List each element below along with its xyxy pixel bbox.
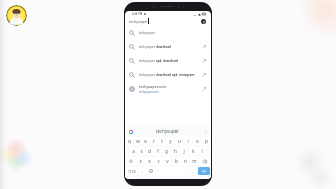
button[interactable]: Search bbox=[198, 167, 210, 175]
staticText: l bbox=[201, 148, 203, 154]
button[interactable]: Insert suggestion bbox=[201, 58, 207, 64]
button[interactable]: Shift bbox=[126, 157, 136, 165]
staticText: 4G bbox=[193, 13, 197, 16]
button[interactable]: w bbox=[134, 137, 141, 145]
button[interactable]: v bbox=[163, 157, 171, 165]
button[interactable]: e bbox=[142, 137, 149, 145]
button[interactable]: techysuper bbox=[125, 40, 211, 54]
staticText: x bbox=[148, 158, 151, 164]
staticText: g bbox=[165, 148, 168, 154]
staticText: instagram bbox=[179, 73, 195, 77]
button[interactable]: o bbox=[193, 137, 201, 145]
staticText: apk bbox=[172, 73, 179, 77]
staticText: download bbox=[156, 45, 171, 49]
button[interactable]: Backspace bbox=[199, 157, 210, 165]
button[interactable]: Emoji bbox=[147, 167, 155, 175]
button[interactable]: Google bbox=[128, 129, 133, 134]
staticText: download bbox=[163, 59, 178, 63]
button[interactable]: k bbox=[189, 147, 197, 155]
staticText: i bbox=[187, 138, 189, 144]
staticText: apk bbox=[156, 59, 163, 63]
staticText: a bbox=[132, 148, 135, 154]
button[interactable]: d bbox=[146, 147, 153, 155]
staticText: 4:44 PM bbox=[132, 12, 143, 16]
button[interactable]: Insert suggestion bbox=[201, 44, 207, 50]
staticText: ?123 bbox=[128, 169, 136, 174]
staticText: z bbox=[139, 158, 142, 164]
button[interactable]: a bbox=[130, 147, 137, 155]
button[interactable]: i bbox=[184, 137, 192, 145]
button[interactable]: p bbox=[202, 137, 210, 145]
staticText: h bbox=[174, 148, 177, 154]
staticText: f bbox=[157, 148, 159, 154]
button[interactable]: techysuper.com bbox=[125, 82, 211, 96]
staticText: n bbox=[184, 158, 187, 164]
button[interactable]: techysuper bbox=[125, 26, 211, 40]
staticText: , bbox=[141, 168, 143, 174]
staticText: v bbox=[166, 158, 169, 164]
staticText: techysuper bbox=[139, 73, 156, 77]
button[interactable]: r bbox=[150, 137, 157, 145]
staticText: u bbox=[178, 138, 181, 144]
staticText: techysuper bbox=[139, 31, 155, 35]
button[interactable]: techysuper bbox=[125, 68, 211, 82]
button[interactable]: More options bbox=[203, 129, 208, 134]
button[interactable]: n bbox=[181, 157, 189, 165]
staticText: techysuper bbox=[129, 19, 148, 24]
button[interactable]: techysuper bbox=[125, 54, 211, 68]
staticText: e bbox=[144, 138, 147, 144]
staticText: techysuper bbox=[156, 128, 179, 134]
button[interactable]: b bbox=[172, 157, 180, 165]
staticText: techysuper bbox=[139, 59, 156, 63]
staticText: o bbox=[196, 138, 199, 144]
button[interactable]: , bbox=[138, 167, 146, 175]
button[interactable]: y bbox=[166, 137, 174, 145]
button[interactable]: Insert suggestion bbox=[201, 72, 207, 78]
button[interactable]: f bbox=[154, 147, 161, 155]
button[interactable]: Channel avatar bbox=[6, 5, 27, 26]
staticText: w bbox=[136, 138, 140, 144]
button[interactable]: j bbox=[180, 147, 188, 155]
button[interactable]: ?123 bbox=[126, 167, 137, 175]
staticText: j bbox=[183, 148, 185, 154]
staticText: m bbox=[192, 158, 197, 164]
button[interactable]: q bbox=[126, 137, 133, 145]
staticText: r bbox=[153, 138, 155, 144]
staticText: b bbox=[175, 158, 178, 164]
staticText: techysuper.com bbox=[139, 90, 159, 94]
button[interactable]: l bbox=[198, 147, 206, 155]
button[interactable]: t bbox=[158, 137, 165, 145]
staticText: download bbox=[156, 73, 172, 77]
button[interactable]: techysuper bbox=[125, 17, 211, 25]
button[interactable]: m bbox=[190, 157, 198, 165]
staticText: y bbox=[169, 138, 172, 144]
button[interactable]: . bbox=[189, 167, 197, 175]
button[interactable]: Clear search bbox=[200, 18, 207, 25]
staticText: q bbox=[128, 138, 131, 144]
button[interactable]: u bbox=[175, 137, 183, 145]
button[interactable]: Insert suggestion bbox=[201, 86, 207, 92]
button[interactable]: z bbox=[137, 157, 144, 165]
staticText: p bbox=[205, 138, 208, 144]
button[interactable]: s bbox=[138, 147, 145, 155]
button[interactable]: g bbox=[162, 147, 170, 155]
staticText: t bbox=[161, 138, 163, 144]
button[interactable]: h bbox=[171, 147, 179, 155]
staticText: . bbox=[192, 168, 194, 174]
staticText: d bbox=[148, 148, 151, 154]
staticText: k bbox=[192, 148, 195, 154]
button[interactable]: c bbox=[154, 157, 162, 165]
staticText: c bbox=[157, 158, 160, 164]
staticText: s bbox=[140, 148, 143, 154]
staticText: techysuper bbox=[139, 45, 156, 49]
button[interactable]: x bbox=[145, 157, 153, 165]
staticText: techysuper.com bbox=[139, 84, 166, 89]
